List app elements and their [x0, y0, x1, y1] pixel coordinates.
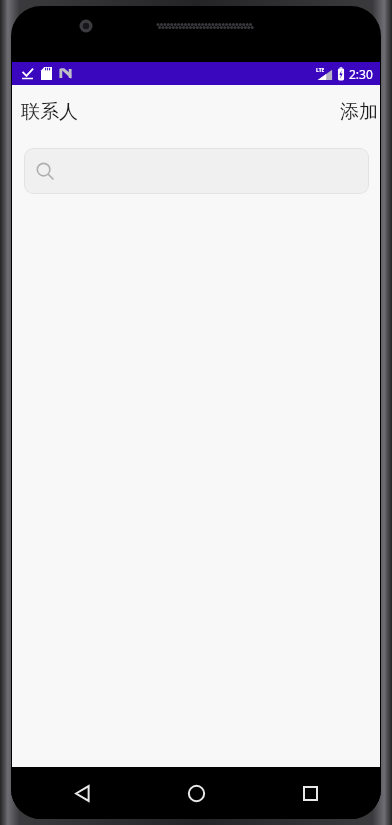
staticText: 添加 [340, 100, 378, 124]
staticText: LTE [316, 67, 325, 74]
staticText: 2:30 [349, 66, 373, 82]
button[interactable]: 添加 [338, 92, 380, 132]
staticText: 联系人 [21, 100, 78, 124]
button[interactable]: Search contacts [24, 148, 369, 194]
button[interactable]: Recent apps [286, 769, 334, 817]
button[interactable]: Home [172, 769, 220, 817]
button[interactable]: Back [58, 769, 106, 817]
